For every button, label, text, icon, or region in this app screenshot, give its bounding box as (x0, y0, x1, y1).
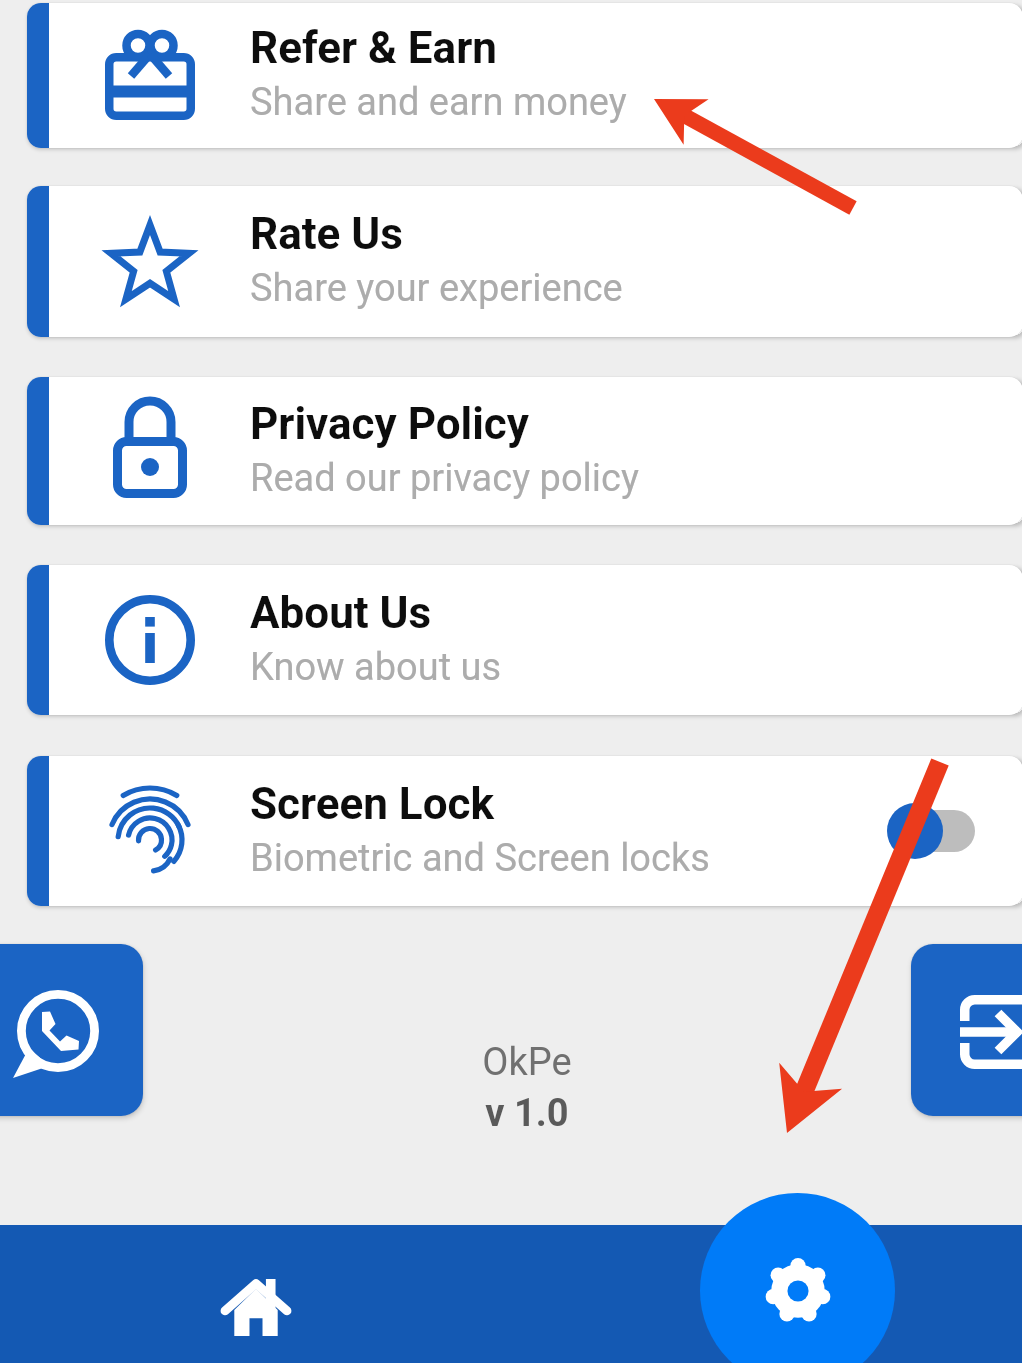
button[interactable]: About Us (27, 565, 1022, 715)
staticText: OkPe (482, 1040, 572, 1085)
button[interactable]: Home (186, 1225, 326, 1363)
staticText: Know about us (250, 645, 502, 690)
staticText: Rate Us (250, 208, 403, 260)
button[interactable]: Screen Lock (27, 756, 1022, 906)
button[interactable]: Screen lock toggle (874, 791, 994, 871)
staticText: Refer & Earn (250, 22, 497, 74)
button[interactable]: Refer & Earn (27, 3, 1022, 148)
button[interactable]: Privacy Policy (27, 377, 1022, 525)
staticText: Share and earn money (250, 80, 627, 125)
staticText: Read our privacy policy (250, 456, 639, 501)
button[interactable]: Rate Us (27, 186, 1022, 337)
staticText: Share your experience (250, 266, 623, 311)
staticText: About Us (250, 587, 432, 639)
staticText: Privacy Policy (250, 398, 529, 450)
button[interactable]: WhatsApp support (0, 944, 143, 1116)
staticText: v 1.0 (485, 1091, 569, 1136)
staticText: Biometric and Screen locks (250, 836, 710, 881)
button[interactable]: Logout (911, 944, 1022, 1116)
button[interactable]: Settings (700, 1193, 895, 1363)
staticText: Screen Lock (250, 778, 494, 830)
